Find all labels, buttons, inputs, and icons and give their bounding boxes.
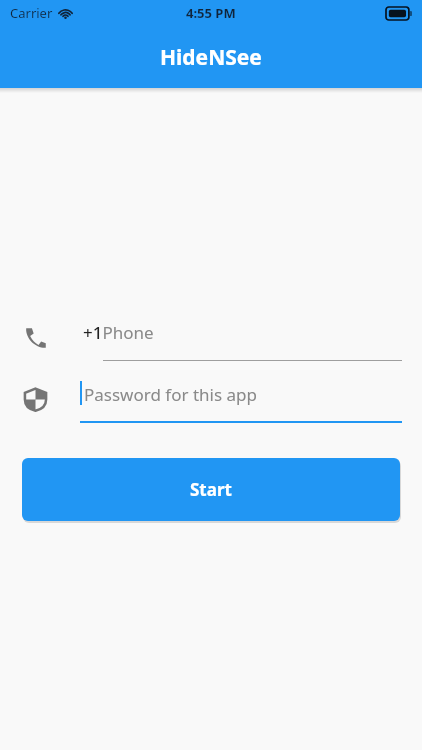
button[interactable]: Start	[22, 458, 400, 521]
other: Phone	[20, 322, 50, 352]
button[interactable]: +1Phone	[80, 315, 402, 369]
staticText: Start	[190, 478, 232, 501]
other: Security	[20, 384, 50, 414]
button[interactable]: Password for this app	[80, 377, 402, 431]
staticText: Password for this app	[84, 383, 257, 406]
staticText: +1Phone	[83, 321, 154, 344]
staticText: HideNSee	[160, 43, 262, 72]
staticText: 4:55 PM	[186, 4, 236, 22]
staticText: Carrier	[10, 4, 53, 22]
